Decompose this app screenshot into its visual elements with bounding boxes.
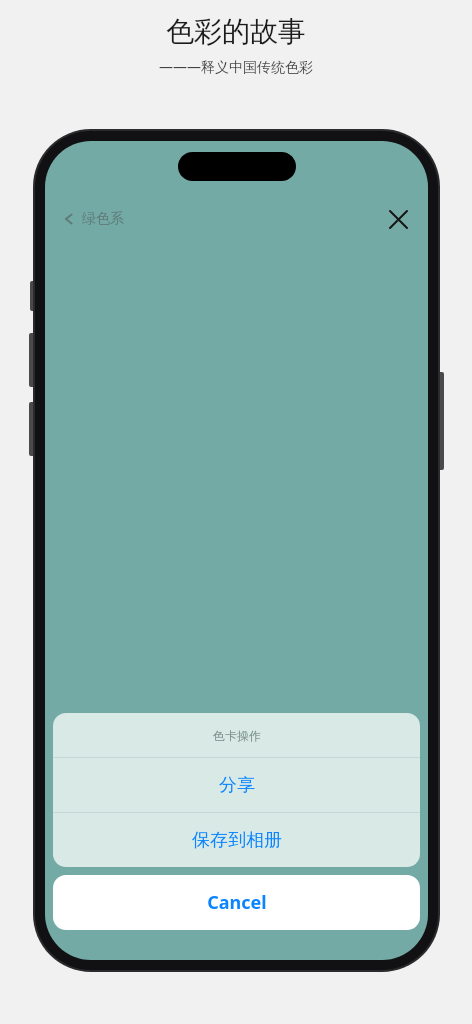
staticText: ———释义中国传统色彩 [159, 57, 313, 76]
button[interactable]: Cancel [53, 875, 420, 930]
button[interactable]: 分享 [53, 758, 420, 812]
staticText: 分享 [219, 774, 255, 797]
staticText: 色彩的故事 [166, 14, 306, 49]
staticText: 保存到相册 [192, 829, 282, 852]
staticText: Cancel [207, 890, 267, 915]
staticText: 绿色系 [82, 210, 124, 228]
button[interactable]: 绿色系 [57, 206, 130, 232]
staticText: 色卡操作 [213, 728, 261, 743]
button[interactable]: Close [382, 203, 414, 235]
button[interactable]: 保存到相册 [53, 813, 420, 867]
